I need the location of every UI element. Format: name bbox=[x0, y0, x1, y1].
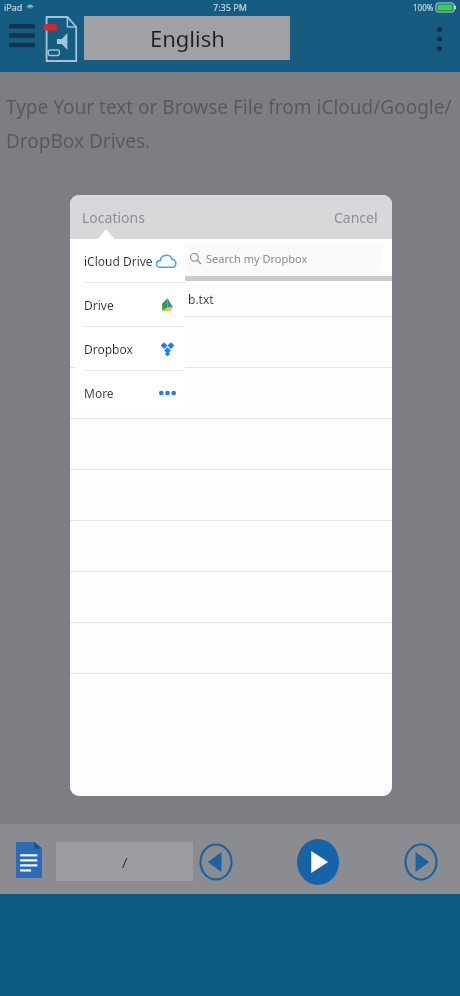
button[interactable]: Document bbox=[12, 840, 46, 880]
button[interactable]: Dropbox bbox=[75, 327, 185, 370]
button[interactable]: English bbox=[84, 16, 290, 60]
button[interactable] bbox=[70, 572, 392, 623]
button[interactable] bbox=[70, 419, 392, 470]
button[interactable]: PDF Speak bbox=[36, 10, 86, 68]
staticText: Dropbox bbox=[84, 341, 133, 357]
button[interactable] bbox=[70, 623, 392, 674]
staticText: Search my Dropbox bbox=[206, 251, 308, 266]
button[interactable]: More bbox=[75, 371, 185, 414]
staticText: More bbox=[84, 385, 114, 401]
staticText: Type Your text or Browse File from iClou… bbox=[6, 94, 452, 120]
button[interactable]: / bbox=[56, 842, 193, 881]
staticText: Drive bbox=[84, 297, 114, 313]
button[interactable] bbox=[70, 368, 392, 419]
staticText: 7:35 PM bbox=[213, 1, 247, 13]
button[interactable] bbox=[70, 521, 392, 572]
staticText: English bbox=[150, 23, 225, 53]
button[interactable]: Search my Dropbox bbox=[182, 244, 382, 272]
button[interactable] bbox=[70, 470, 392, 521]
button[interactable]: More options bbox=[424, 18, 454, 60]
button[interactable] bbox=[70, 317, 392, 368]
button[interactable]: Previous bbox=[196, 842, 236, 882]
staticText: Cancel bbox=[334, 208, 378, 227]
button[interactable]: b.txt bbox=[70, 281, 392, 317]
staticText: / bbox=[122, 852, 128, 872]
button[interactable]: Play bbox=[295, 838, 341, 886]
staticText: b.txt bbox=[188, 291, 214, 307]
button[interactable]: Next bbox=[401, 842, 441, 882]
button[interactable]: Cancel bbox=[300, 195, 378, 239]
button[interactable]: Menu bbox=[2, 16, 42, 58]
staticText: 100% bbox=[413, 2, 434, 13]
staticText: iPad bbox=[4, 1, 23, 13]
staticText: Locations bbox=[82, 208, 145, 227]
button[interactable]: iCloud Drive bbox=[75, 239, 185, 282]
staticText: DropBox Drives. bbox=[6, 128, 151, 154]
button[interactable]: Locations bbox=[82, 195, 190, 239]
button[interactable]: Drive bbox=[75, 283, 185, 326]
staticText: iCloud Drive bbox=[84, 253, 153, 269]
